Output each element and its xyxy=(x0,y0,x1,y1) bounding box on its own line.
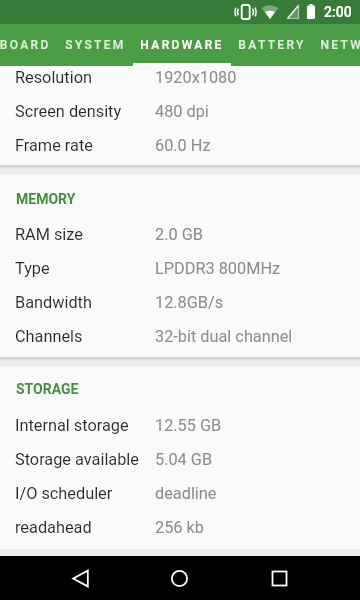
staticText: Resolution xyxy=(15,68,92,87)
staticText: 1920x1080 xyxy=(155,68,237,87)
button[interactable]: Home xyxy=(157,556,201,600)
button[interactable]: Channels xyxy=(0,319,360,353)
staticText: Channels xyxy=(15,327,83,346)
button[interactable]: RAM size xyxy=(0,217,360,251)
staticText: BATTERY xyxy=(238,38,306,52)
staticText: SYSTEM xyxy=(65,38,126,52)
button[interactable]: NETWORK xyxy=(313,24,360,66)
staticText: Frame rate xyxy=(15,136,93,155)
button[interactable]: Bandwidth xyxy=(0,285,360,319)
button[interactable]: Frame rate xyxy=(0,128,360,162)
button[interactable]: I/O scheduler xyxy=(0,476,360,510)
staticText: Type xyxy=(15,259,50,278)
staticText: 12.8GB/s xyxy=(155,293,224,312)
button[interactable]: Internal storage xyxy=(0,408,360,442)
staticText: STORAGE xyxy=(16,381,79,397)
staticText: deadline xyxy=(155,484,217,503)
staticText: 2.0 GB xyxy=(155,225,203,244)
staticText: Screen density xyxy=(15,102,122,121)
button[interactable]: BATTERY xyxy=(231,24,313,66)
staticText: 2:00 xyxy=(324,4,352,20)
staticText: LPDDR3 800MHz xyxy=(155,259,281,278)
staticText: RAM size xyxy=(15,225,83,244)
staticText: Bandwidth xyxy=(15,293,92,312)
button[interactable]: Resolution xyxy=(0,66,360,94)
staticText: 5.04 GB xyxy=(155,450,213,469)
staticText: MEMORY xyxy=(16,191,76,207)
staticText: Internal storage xyxy=(15,416,129,435)
button[interactable]: Screen density xyxy=(0,94,360,128)
button[interactable]: Type xyxy=(0,251,360,285)
staticText: Storage available xyxy=(15,450,139,469)
button[interactable]: readahead xyxy=(0,510,360,544)
staticText: 12.55 GB xyxy=(155,416,222,435)
staticText: MOTHERBOARD xyxy=(0,38,51,52)
button[interactable]: Recent apps xyxy=(257,556,301,600)
button[interactable]: Storage available xyxy=(0,442,360,476)
button[interactable]: Back xyxy=(58,556,102,600)
button[interactable]: HARDWARE xyxy=(133,24,231,66)
staticText: readahead xyxy=(15,518,92,537)
button[interactable]: MOTHERBOARD xyxy=(0,24,58,66)
staticText: NETWORK xyxy=(320,38,360,52)
staticText: 60.0 Hz xyxy=(155,136,211,155)
button[interactable]: SYSTEM xyxy=(58,24,133,66)
staticText: 480 dpi xyxy=(155,102,209,121)
staticText: HARDWARE xyxy=(140,38,224,52)
staticText: 32-bit dual channel xyxy=(155,327,293,346)
staticText: I/O scheduler xyxy=(15,484,113,503)
staticText: 256 kb xyxy=(155,518,204,537)
